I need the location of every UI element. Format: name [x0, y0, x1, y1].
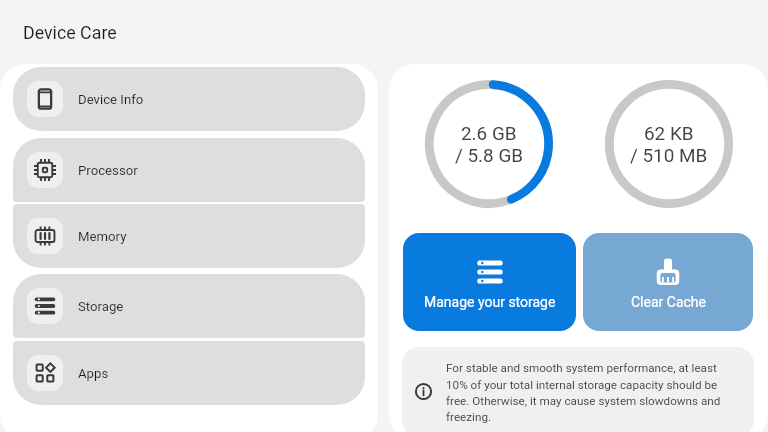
staticText: Device Info: [78, 92, 144, 107]
staticText: Apps: [78, 366, 109, 381]
staticText: Clear Cache: [631, 294, 706, 310]
button[interactable]: Processor: [13, 138, 365, 202]
staticText: / 5.8 GB: [455, 144, 524, 166]
staticText: Memory: [78, 229, 127, 244]
staticText: For stable and smooth system performance…: [446, 361, 717, 375]
staticText: / 510 MB: [630, 144, 708, 166]
staticText: 10% of your total internal storage capac…: [446, 378, 718, 392]
staticText: free. Otherwise, it may cause system slo…: [446, 394, 721, 408]
staticText: 62 KB: [644, 122, 694, 144]
staticText: Device Care: [23, 22, 117, 43]
staticText: 2.6 GB: [461, 122, 517, 144]
staticText: Manage your storage: [424, 294, 556, 310]
button[interactable]: Manage your storage: [403, 233, 576, 331]
button[interactable]: Apps: [13, 341, 365, 405]
staticText: Storage: [78, 299, 124, 314]
button[interactable]: Device Info: [13, 67, 365, 131]
button[interactable]: Storage: [13, 274, 365, 338]
button[interactable]: Clear Cache: [583, 233, 753, 331]
staticText: freezing.: [446, 410, 492, 424]
staticText: Processor: [78, 163, 138, 178]
button[interactable]: Memory: [13, 204, 365, 268]
